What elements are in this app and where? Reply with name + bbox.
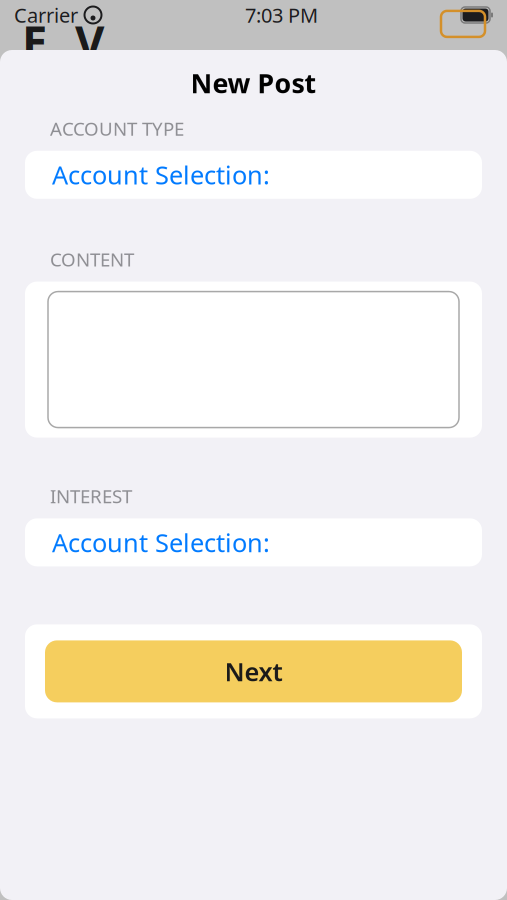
button[interactable]: Account Selection: [25, 518, 482, 566]
staticText: Next [224, 654, 282, 688]
button[interactable]: Content text field [25, 282, 482, 438]
staticText: Account Selection: [52, 158, 270, 192]
staticText: V [75, 11, 104, 71]
staticText: CONTENT [50, 247, 134, 272]
staticText: Account Selection: [52, 525, 270, 559]
staticText: INTEREST [50, 484, 132, 508]
staticText: E [22, 11, 47, 71]
button[interactable]: Account Selection: [25, 151, 482, 199]
staticText: ACCOUNT TYPE [50, 116, 184, 141]
staticText: Carrier [14, 2, 78, 28]
staticText: 7:03 PM [245, 2, 318, 28]
staticText: New Post [190, 65, 316, 101]
button[interactable]: Next [25, 624, 482, 718]
